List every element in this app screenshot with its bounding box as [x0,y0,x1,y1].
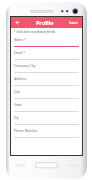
staticText: Name * [14,37,26,41]
staticText: City [14,89,20,93]
button[interactable]: Address [14,76,79,89]
button[interactable]: Phone Number [14,128,79,141]
staticText: Address [14,76,27,80]
staticText: Zip [14,115,19,119]
staticText: * Indicates mandatory fields [14,30,56,34]
button[interactable]: City [14,89,79,102]
staticText: Email * [14,50,26,54]
staticText: Save [69,20,78,25]
button[interactable]: Email * [14,50,79,63]
button[interactable]: Back [13,18,22,27]
button[interactable]: Name * [14,37,79,50]
staticText: Company City [14,63,36,67]
staticText: Profile [36,19,54,26]
button[interactable]: Save [67,18,80,27]
button[interactable]: Zip [14,115,79,128]
staticText: Phone Number [14,128,38,132]
staticText: State [14,102,22,106]
button[interactable]: Company City [14,63,79,76]
button[interactable]: State [14,102,79,115]
